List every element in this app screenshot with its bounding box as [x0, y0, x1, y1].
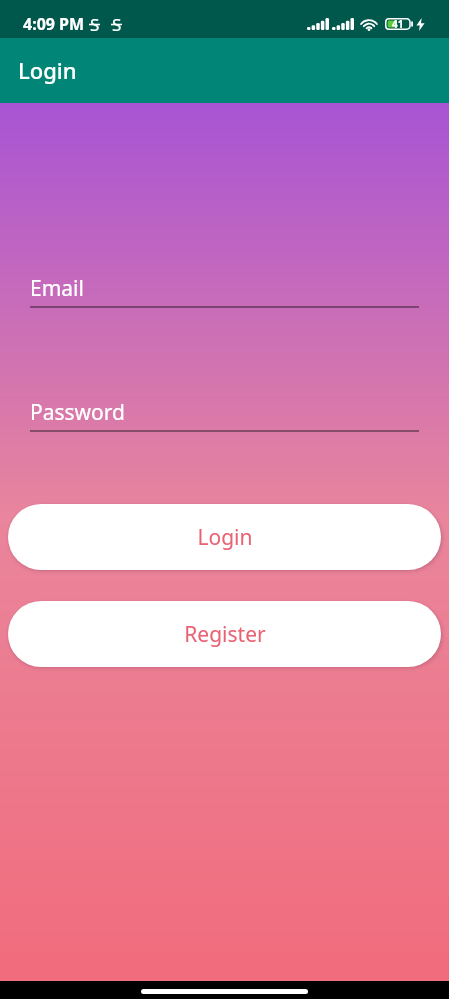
- staticText: Register: [184, 620, 266, 649]
- staticText: S: [112, 13, 122, 35]
- button[interactable]: Email: [30, 274, 419, 308]
- other: SIM mobile data off: [111, 13, 122, 35]
- other: SIM mobile data off: [89, 13, 100, 35]
- staticText: 4:09 PM: [23, 13, 85, 35]
- other: Battery 41 percent, charging: [385, 17, 413, 31]
- staticText: 41: [392, 17, 404, 31]
- staticText: Login: [18, 55, 77, 85]
- button[interactable]: Password: [30, 398, 419, 432]
- other: Wi-Fi connected: [360, 18, 378, 31]
- staticText: Login: [197, 523, 253, 552]
- staticText: Password: [30, 398, 125, 427]
- other: Cellular signal strength: [307, 18, 329, 30]
- other: Cellular signal strength: [332, 18, 354, 30]
- staticText: Email: [30, 274, 84, 303]
- staticText: S: [90, 13, 100, 35]
- button[interactable]: Register: [8, 601, 441, 667]
- other: Charging: [416, 18, 425, 31]
- button[interactable]: Login: [8, 504, 441, 570]
